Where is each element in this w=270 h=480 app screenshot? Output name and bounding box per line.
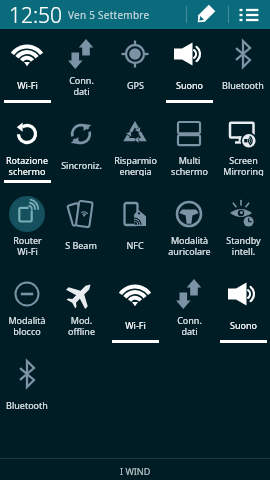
staticText: Multi schermo (171, 154, 208, 176)
staticText: Wi-Fi (17, 79, 38, 91)
button[interactable]: Router Wi-Fi (0, 189, 54, 269)
button[interactable]: NFC (108, 189, 162, 269)
button[interactable]: Standby intell. (216, 189, 270, 269)
staticText: Conn. dati (69, 74, 94, 96)
staticText: Sincroniz. (61, 159, 102, 171)
staticText: Suono (230, 319, 257, 331)
button[interactable]: Conn. dati (54, 29, 108, 109)
staticText: Ven 5 Settembre (68, 8, 150, 22)
staticText: 12:50 (9, 1, 63, 30)
staticText: GPS (127, 79, 144, 91)
button[interactable]: GPS (108, 29, 162, 109)
button[interactable]: Bluetooth (0, 349, 54, 429)
staticText: NFC (126, 239, 144, 251)
button[interactable]: Mod. offline (54, 269, 108, 349)
button[interactable]: Wi-Fi (0, 29, 54, 109)
staticText: Modalità blocco (8, 314, 46, 336)
staticText: Conn. dati (177, 314, 202, 336)
button[interactable]: Edit quick settings (194, 4, 216, 26)
staticText: Mod. offline (68, 314, 95, 336)
staticText: Wi-Fi (125, 319, 146, 331)
button[interactable]: Risparmio energia (108, 109, 162, 189)
button[interactable]: Multi schermo (162, 109, 216, 189)
staticText: Standby intell. (226, 234, 261, 256)
button[interactable]: Screen Mirroring (216, 109, 270, 189)
staticText: Router Wi-Fi (13, 234, 42, 256)
button[interactable]: Show all settings (238, 4, 260, 26)
button[interactable]: Conn. dati (162, 269, 216, 349)
staticText: S Beam (65, 239, 97, 251)
staticText: Suono (176, 79, 203, 91)
staticText: Bluetooth (6, 399, 48, 411)
button[interactable]: Suono (216, 269, 270, 349)
staticText: Modalità auricolare (168, 234, 211, 256)
button[interactable]: Bluetooth (216, 29, 270, 109)
staticText: Bluetooth (222, 79, 264, 91)
staticText: I WIND (120, 465, 151, 477)
button[interactable]: Suono (162, 29, 216, 109)
button[interactable]: Sincroniz. (54, 109, 108, 189)
button[interactable]: Rotazione schermo (0, 109, 54, 189)
staticText: Risparmio energia (114, 154, 157, 176)
button[interactable]: S Beam (54, 189, 108, 269)
staticText: Screen Mirroring (223, 154, 264, 176)
button[interactable]: Modalità blocco (0, 269, 54, 349)
button[interactable]: Modalità auricolare (162, 189, 216, 269)
button[interactable]: Wi-Fi (108, 269, 162, 349)
staticText: Rotazione schermo (6, 154, 48, 176)
